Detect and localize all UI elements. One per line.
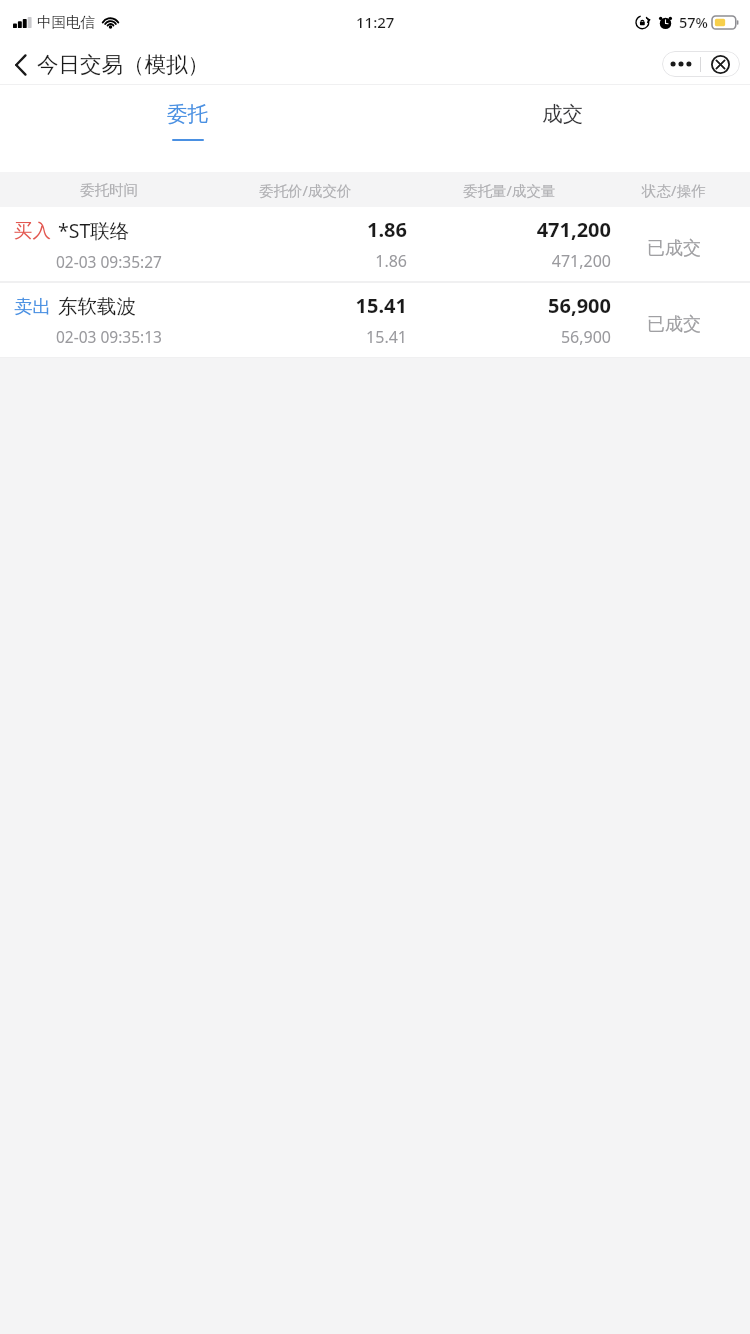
staticText: 02-03 09:35:27 bbox=[56, 251, 162, 272]
staticText: 已成交 bbox=[647, 313, 701, 336]
staticText: 东软载波 bbox=[58, 294, 136, 319]
button[interactable]: 成交 bbox=[375, 85, 750, 172]
staticText: 委托 bbox=[167, 101, 208, 127]
staticText: 15.41 bbox=[355, 292, 407, 319]
button[interactable]: 卖出 bbox=[0, 283, 750, 357]
staticText: 委托价/成交价 bbox=[259, 180, 352, 200]
staticText: 委托时间 bbox=[80, 181, 138, 199]
staticText: 11:27 bbox=[356, 12, 395, 32]
staticText: 今日交易（模拟） bbox=[37, 51, 209, 78]
staticText: 已成交 bbox=[647, 237, 701, 260]
button[interactable]: More options bbox=[662, 51, 700, 77]
staticText: 状态/操作 bbox=[642, 180, 706, 200]
staticText: 471,200 bbox=[551, 250, 611, 272]
button[interactable]: 委托 bbox=[0, 85, 375, 172]
staticText: 中国电信 bbox=[37, 13, 95, 31]
staticText: 57% bbox=[679, 12, 708, 32]
staticText: 56,900 bbox=[560, 326, 611, 348]
staticText: 471,200 bbox=[536, 216, 611, 243]
staticText: 02-03 09:35:13 bbox=[56, 326, 162, 347]
staticText: *ST联络 bbox=[58, 217, 130, 244]
other: Back bbox=[14, 53, 28, 77]
button[interactable]: Back bbox=[0, 47, 217, 82]
staticText: 成交 bbox=[542, 101, 583, 127]
staticText: 56,900 bbox=[548, 292, 611, 319]
staticText: 委托量/成交量 bbox=[463, 180, 556, 200]
staticText: 1.86 bbox=[375, 250, 407, 272]
staticText: 15.41 bbox=[366, 326, 407, 348]
button[interactable]: Close bbox=[701, 51, 740, 77]
staticText: 卖出 bbox=[14, 295, 51, 318]
staticText: 买入 bbox=[14, 219, 51, 242]
staticText: 1.86 bbox=[367, 216, 407, 243]
button[interactable]: 买入 bbox=[0, 207, 750, 281]
